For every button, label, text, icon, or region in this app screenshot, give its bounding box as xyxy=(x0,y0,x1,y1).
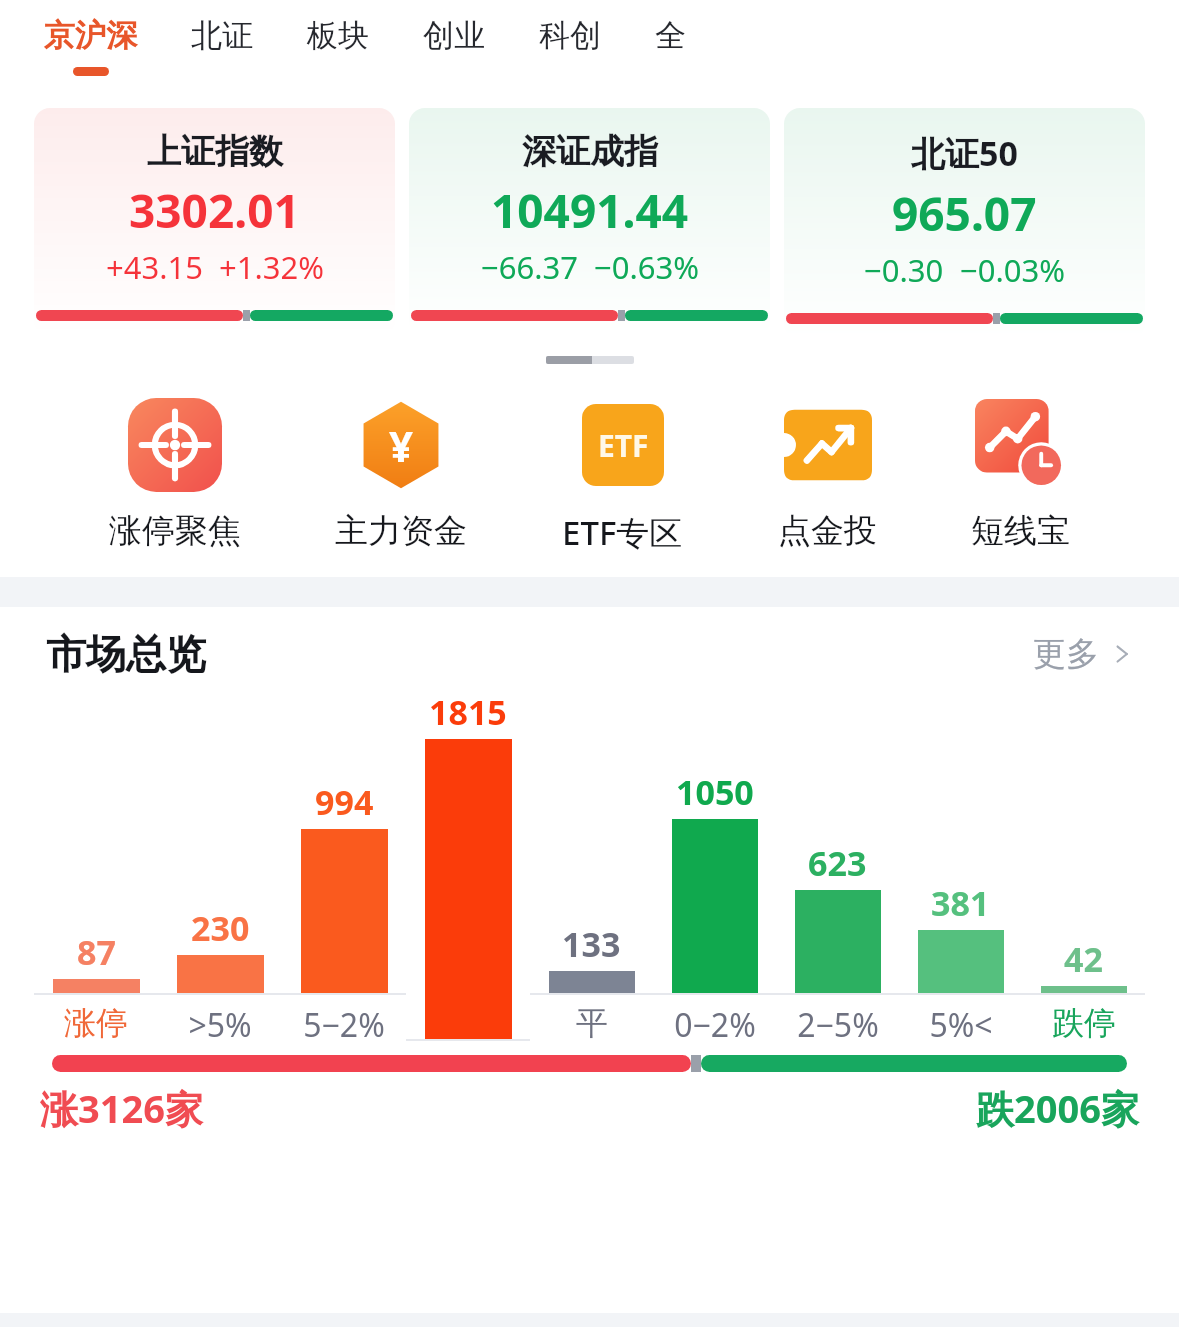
button[interactable]: 京沪深 xyxy=(30,16,151,76)
staticText: −66.37 xyxy=(481,246,578,288)
button[interactable]: 1050 xyxy=(653,689,776,1043)
other: 更多 xyxy=(1111,643,1133,665)
other: 主力资金 xyxy=(354,398,448,492)
staticText: 北证 xyxy=(191,16,253,55)
button[interactable]: 更多 xyxy=(1033,633,1133,675)
button[interactable]: 创业 xyxy=(409,16,499,55)
staticText: 点金投 xyxy=(778,510,877,552)
staticText: 230 xyxy=(191,905,250,951)
staticText: 市场总览 xyxy=(46,629,206,679)
staticText: 北证50 xyxy=(911,130,1018,176)
staticText: 跌停 xyxy=(1052,1003,1116,1043)
button[interactable]: 北证 xyxy=(177,16,267,55)
staticText: 主力资金 xyxy=(335,510,467,552)
staticText: ETF xyxy=(598,425,649,466)
staticText: +1.32% xyxy=(219,246,324,288)
button[interactable]: 点金投 xyxy=(772,398,883,552)
button[interactable]: 全 xyxy=(641,16,700,55)
staticText: 上证指数 xyxy=(147,130,283,173)
button[interactable]: 87 xyxy=(34,689,158,1043)
other: 短线宝 xyxy=(975,399,1067,491)
staticText: 10491.44 xyxy=(491,179,689,242)
staticText: 42 xyxy=(1064,936,1103,982)
button[interactable]: 涨停聚焦 xyxy=(103,398,247,552)
staticText: 涨停 xyxy=(64,1003,128,1043)
button[interactable]: 主力资金 xyxy=(329,398,473,552)
other: ETF专区 xyxy=(582,404,664,486)
other: 点金投 xyxy=(784,401,872,489)
staticText: 创业 xyxy=(423,16,485,55)
button[interactable]: 381 xyxy=(899,689,1022,1043)
button[interactable]: 深证成指 xyxy=(409,108,770,335)
staticText: 994 xyxy=(315,779,374,825)
staticText: 科创 xyxy=(539,16,601,55)
staticText: 短线宝 xyxy=(971,510,1070,552)
staticText: 1815 xyxy=(429,689,507,735)
staticText: 2−5% xyxy=(797,1003,879,1043)
staticText: 更多 xyxy=(1033,633,1099,675)
staticText: 0−2% xyxy=(674,1003,756,1043)
button[interactable]: 北证50 xyxy=(784,108,1145,338)
staticText: 5%< xyxy=(929,1003,993,1043)
other: 涨停聚焦 xyxy=(128,398,222,492)
button[interactable]: 科创 xyxy=(525,16,615,55)
staticText: 深证成指 xyxy=(522,130,658,173)
button[interactable]: 230 xyxy=(158,689,282,1043)
button[interactable]: ETF专区 xyxy=(556,398,689,555)
staticText: 涨停聚焦 xyxy=(109,510,241,552)
staticText: ¥ xyxy=(389,417,414,474)
button[interactable]: 133 xyxy=(530,689,653,1043)
button[interactable]: 623 xyxy=(776,689,899,1043)
staticText: 133 xyxy=(562,921,621,967)
staticText: −0.03% xyxy=(960,249,1065,291)
button[interactable]: 994 xyxy=(282,689,406,1043)
staticText: +43.15 xyxy=(106,246,203,288)
button[interactable]: 板块 xyxy=(293,16,383,55)
button[interactable]: 上证指数 xyxy=(34,108,395,335)
staticText: >5% xyxy=(188,1003,252,1043)
staticText: 全 xyxy=(655,16,686,55)
staticText: 京沪深 xyxy=(44,16,137,55)
button[interactable]: 42 xyxy=(1022,689,1145,1043)
staticText: 965.07 xyxy=(892,182,1037,245)
staticText: −0.30 xyxy=(864,249,944,291)
staticText: 板块 xyxy=(307,16,369,55)
staticText: ETF专区 xyxy=(562,510,683,555)
staticText: 381 xyxy=(931,880,990,926)
staticText: 87 xyxy=(77,929,116,975)
staticText: 1050 xyxy=(676,769,754,815)
button[interactable]: 短线宝 xyxy=(965,398,1076,552)
staticText: −0.63% xyxy=(594,246,699,288)
staticText: 涨3126家 xyxy=(40,1082,203,1134)
staticText: 平 xyxy=(576,1003,608,1043)
button[interactable]: 1815 xyxy=(406,689,530,1043)
staticText: 5−2% xyxy=(303,1003,385,1043)
staticText: 跌2006家 xyxy=(976,1082,1139,1134)
staticText: 623 xyxy=(808,840,867,886)
staticText: 3302.01 xyxy=(129,179,300,242)
